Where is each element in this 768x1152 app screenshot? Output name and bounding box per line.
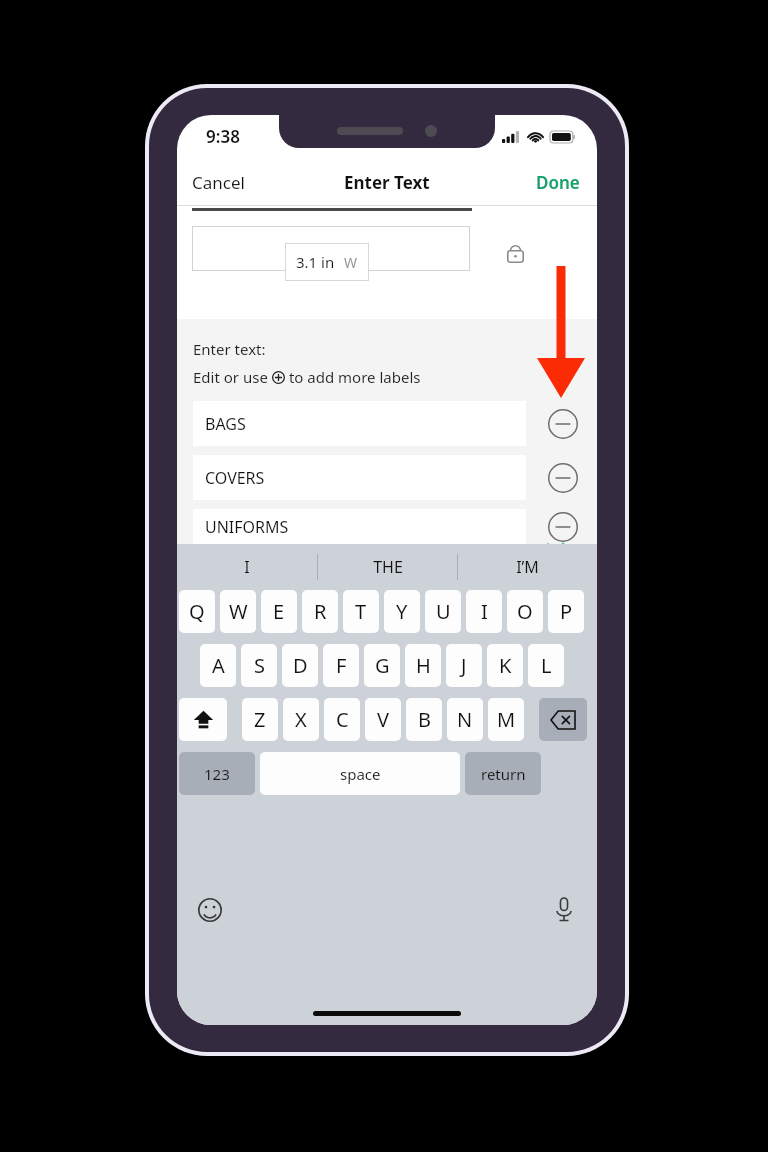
staticText: R [314,598,327,625]
button[interactable]: Cancel [177,163,260,202]
staticText: P [560,598,573,625]
button[interactable]: space [260,752,460,795]
staticText: UNIFORMS [205,516,289,538]
staticText: 123 [204,764,230,784]
staticText: Edit or use [193,367,272,387]
button[interactable]: Shift [179,698,227,741]
button[interactable]: O [507,590,543,633]
button[interactable]: J [446,644,482,687]
button[interactable]: I’M [458,544,597,590]
staticText: Cancel [192,171,245,194]
button[interactable]: I [466,590,502,633]
button[interactable]: W [220,590,256,633]
button[interactable]: Done [519,163,597,202]
staticText: to add more labels [285,367,421,387]
staticText: S [254,652,265,679]
staticText: I [481,598,488,625]
button[interactable]: THE [318,544,457,590]
staticText: I [244,556,250,578]
button[interactable]: C [324,698,360,741]
staticText: J [461,652,467,679]
staticText: COVERS [205,467,265,489]
staticText: G [375,652,390,679]
button[interactable]: UNIFORMS [193,509,526,544]
button[interactable]: E [261,590,297,633]
staticText: X [295,706,307,733]
button[interactable]: Remove UNIFORMS [544,509,582,544]
staticText: F [336,652,347,679]
staticText: return [481,764,526,784]
button[interactable]: Z [242,698,278,741]
staticText: U [436,598,451,625]
staticText: A [212,652,225,679]
staticText: Z [254,706,266,733]
button[interactable]: K [487,644,523,687]
button[interactable]: D [282,644,318,687]
button[interactable]: Lock aspect ratio [497,234,533,270]
staticText: T [355,598,367,625]
button[interactable]: U [425,590,461,633]
staticText: 3.1 in [296,252,335,272]
staticText: I’M [516,556,539,578]
button[interactable]: P [548,590,584,633]
staticText: Done [536,171,580,194]
button[interactable]: H [405,644,441,687]
button[interactable]: L [528,644,564,687]
staticText: BAGS [205,413,246,435]
staticText: H [416,652,431,679]
staticText: V [377,706,389,733]
staticText: W [229,598,248,625]
button[interactable]: S [241,644,277,687]
button[interactable]: B [406,698,442,741]
staticText: Q [189,598,205,625]
button[interactable]: 123 [179,752,255,795]
button[interactable]: Y [384,590,420,633]
button[interactable]: M [488,698,524,741]
staticText: B [418,706,431,733]
button[interactable]: R [302,590,338,633]
button[interactable]: Remove BAGS [544,405,582,443]
staticText: W [344,253,358,272]
button[interactable]: Emoji [191,891,229,929]
staticText: M [497,706,516,733]
button[interactable]: V [365,698,401,741]
button[interactable]: Remove COVERS [544,459,582,497]
button[interactable]: BAGS [193,401,526,446]
staticText: E [273,598,285,625]
button[interactable]: T [343,590,379,633]
button[interactable]: Backspace [539,698,587,741]
staticText: Y [396,598,408,625]
staticText: 9:38 [206,125,240,148]
button[interactable]: Q [179,590,215,633]
staticText: Enter Text [344,171,430,194]
staticText: THE [373,556,403,578]
staticText: D [293,652,308,679]
button[interactable]: I [177,544,317,590]
staticText: O [517,598,533,625]
button[interactable]: G [364,644,400,687]
button[interactable]: A [200,644,236,687]
button[interactable]: X [283,698,319,741]
button[interactable]: return [465,752,541,795]
button[interactable]: N [447,698,483,741]
staticText: C [336,706,349,733]
button[interactable]: COVERS [193,455,526,500]
button[interactable]: F [323,644,359,687]
staticText: L [541,652,552,679]
staticText: space [340,764,381,784]
button[interactable]: Dictation [545,891,583,929]
staticText: K [499,652,512,679]
staticText: N [457,706,473,733]
staticText: Enter text: [193,339,266,359]
